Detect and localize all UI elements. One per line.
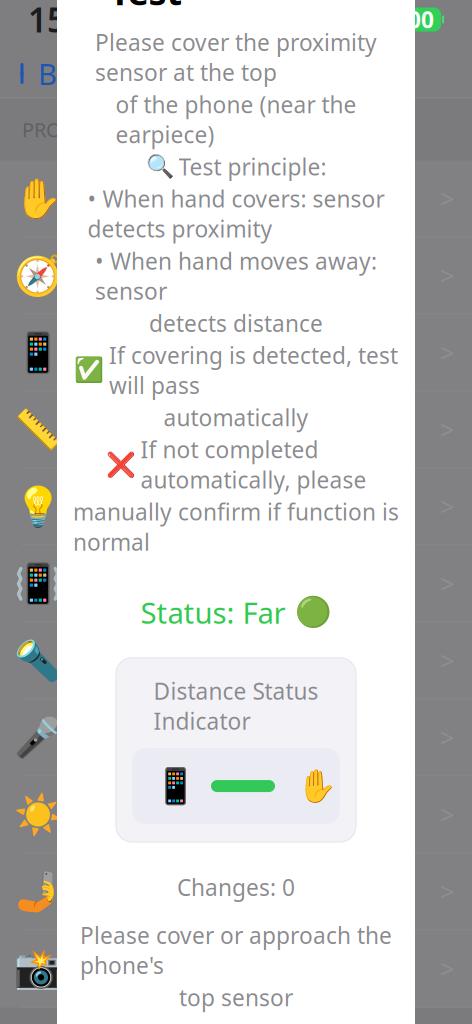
staticText: 🔍 (145, 154, 173, 180)
staticText: Distance Status Indicator (153, 676, 318, 736)
staticText: Compass (66, 224, 190, 261)
staticText: > (440, 490, 454, 523)
staticText: Light Sensor (66, 455, 235, 492)
staticText: 🎤 (14, 715, 62, 760)
staticText: > (440, 798, 454, 831)
staticText: 📱 (154, 766, 197, 806)
staticText: ✋ (297, 768, 337, 804)
staticText: Test principle: (178, 152, 326, 182)
staticText: manually confirm if function is normal (73, 497, 399, 557)
button[interactable]: 🤳 (0, 853, 472, 930)
staticText: 100 (395, 4, 434, 34)
staticText: Ruler (66, 378, 138, 415)
staticText: • When hand moves away: sensor (95, 246, 377, 306)
staticText: ✋ (14, 176, 62, 221)
staticText: automatically (163, 402, 308, 432)
staticText: Please cover the proximity sensor at the… (95, 27, 377, 87)
button[interactable]: ✋ (0, 160, 472, 237)
button[interactable]: 📏 (0, 391, 472, 468)
staticText: 📏 (14, 407, 62, 452)
staticText: Back (38, 54, 103, 93)
staticText: Status: Far (140, 593, 285, 632)
staticText: Display pixel detection (66, 344, 202, 404)
staticText: > (440, 259, 454, 292)
button[interactable]: 📳 (0, 545, 472, 622)
staticText: Selfie camera function detection (66, 886, 210, 977)
button[interactable]: Back (0, 46, 103, 101)
staticText: top sensor (179, 982, 293, 1012)
staticText: Flashlight (66, 594, 200, 631)
staticText: ❌ (105, 451, 135, 478)
staticText: > (440, 875, 454, 908)
staticText: > (440, 413, 454, 446)
staticText: ☀️ (14, 792, 62, 837)
staticText: 📸 (14, 946, 62, 991)
button[interactable]: 💡 (0, 468, 472, 545)
staticText: > (440, 721, 454, 754)
staticText: > (440, 182, 454, 215)
staticText: > (440, 952, 454, 985)
staticText: Microphone function detection (66, 714, 196, 804)
button[interactable]: 🎤 (0, 699, 472, 776)
staticText: 🤳 (14, 869, 62, 914)
staticText: If not completed automatically, please (140, 434, 366, 495)
staticText: detects distance (149, 308, 323, 338)
staticText: Measurement detection (66, 421, 216, 481)
staticText: 🟢 (294, 596, 331, 629)
staticText: Please cover or approach the phone's (80, 920, 392, 980)
button[interactable]: 🔦 (0, 622, 472, 699)
staticText: Ambient light detection (66, 498, 210, 558)
staticText: Magnetometer detection (66, 267, 227, 327)
staticText: PROFESSIONAL TEST ITEMS (20 ITEMS) (22, 116, 380, 143)
staticText: ✅ (74, 357, 104, 384)
button[interactable]: 📸 (0, 930, 472, 1007)
staticText: Vibration (66, 532, 192, 569)
staticText: Front Camera (66, 806, 171, 881)
staticText: 💡 (14, 484, 62, 529)
staticText: Main camera function detection (66, 945, 206, 1024)
staticText: > (440, 336, 454, 369)
staticText: > (440, 567, 454, 600)
staticText: 📳 (14, 561, 62, 606)
button[interactable]: 🧭 (0, 237, 472, 314)
staticText: Brightness adjustment function detection (66, 776, 188, 896)
staticText: Changes: 0 (177, 872, 295, 902)
staticText: Vibration motor detection (66, 575, 236, 635)
button[interactable]: ☀️ (0, 776, 472, 853)
staticText: Proximity detection (66, 209, 167, 269)
staticText: 📱 (14, 330, 62, 375)
staticText: 15:21 (28, 0, 113, 42)
staticText: Professional Test (111, 54, 361, 93)
staticText: > (440, 644, 454, 677)
staticText: Microphone (66, 671, 230, 708)
staticText: Proximity Sensor Test (109, 0, 413, 15)
staticText: of the phone (near the earpiece) (115, 89, 356, 150)
staticText: 🧭 (14, 253, 62, 298)
staticText: • When hand covers: sensor detects proxi… (87, 184, 384, 244)
staticText: Brightness (66, 733, 213, 770)
staticText: 🔦 (14, 638, 62, 683)
staticText: Rear Camera (66, 902, 240, 939)
staticText: Proximity Sensor (66, 128, 197, 203)
staticText: Flashlight function detection (66, 637, 170, 727)
button[interactable]: 📱 (0, 314, 472, 391)
staticText: If covering is detected, test will pass (109, 340, 398, 400)
staticText: Screen Test (66, 301, 219, 338)
